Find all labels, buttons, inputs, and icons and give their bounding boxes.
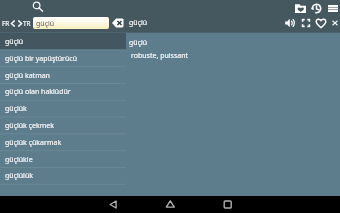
button[interactable]: Menu bbox=[326, 2, 339, 15]
staticText: güçlü bbox=[5, 37, 24, 47]
button[interactable]: güçlük bbox=[0, 100, 126, 117]
staticText: güçlü olan haklüdür bbox=[5, 87, 71, 97]
button[interactable]: Add to favourites bbox=[314, 16, 327, 29]
staticText: güçlü bbox=[36, 19, 55, 29]
staticText: robuste, puissant bbox=[131, 51, 189, 61]
button[interactable]: FR bbox=[0, 15, 32, 29]
staticText: güçlük bbox=[5, 104, 27, 114]
button[interactable]: Home bbox=[161, 196, 185, 213]
staticText: TR bbox=[23, 19, 31, 28]
button[interactable]: Close bbox=[328, 16, 340, 29]
button[interactable]: History bbox=[310, 2, 323, 15]
button[interactable]: güçlü katman bbox=[0, 67, 126, 84]
staticText: güçlükle bbox=[5, 155, 33, 165]
button[interactable]: Search bbox=[31, 0, 44, 13]
button[interactable]: Pronounce bbox=[283, 16, 296, 29]
button[interactable]: güçlük çekmek bbox=[0, 117, 126, 134]
button[interactable]: güçlükle bbox=[0, 151, 126, 168]
button[interactable]: güçlü olan haklüdür bbox=[0, 83, 126, 100]
button[interactable]: güçlük çükarmak bbox=[0, 134, 126, 151]
button[interactable]: güçlü bbox=[33, 17, 109, 29]
button[interactable]: güçlü bir yapüştürücü bbox=[0, 50, 126, 67]
button[interactable]: Back bbox=[101, 196, 125, 213]
button[interactable]: Fullscreen bbox=[299, 16, 312, 29]
staticText: güçlü bbox=[129, 38, 148, 48]
staticText: güçlü bir yapüştürücü bbox=[5, 54, 78, 64]
button[interactable]: güçlülük bbox=[0, 167, 126, 184]
staticText: güçlük çekmek bbox=[5, 121, 54, 131]
button[interactable]: Recents bbox=[217, 196, 241, 213]
button[interactable]: güçlü bbox=[0, 33, 126, 50]
staticText: güçlülük bbox=[5, 171, 33, 181]
button[interactable]: Favourites bbox=[294, 2, 307, 15]
staticText: FR bbox=[2, 19, 10, 28]
staticText: güçlük çükarmak bbox=[5, 138, 62, 148]
staticText: güçlü bbox=[129, 18, 148, 28]
staticText: güçlü katman bbox=[5, 71, 50, 81]
button[interactable]: Clear text bbox=[112, 18, 124, 28]
